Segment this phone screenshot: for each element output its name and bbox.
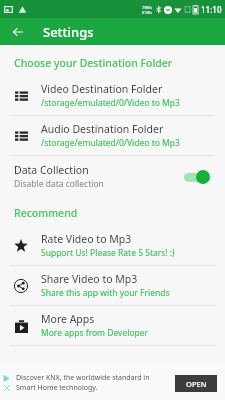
button[interactable]: Share Video to Mp3: [0, 266, 225, 305]
button[interactable]: Back: [7, 21, 29, 43]
button[interactable]: Video Destination Folder: [0, 76, 225, 115]
button[interactable]: OPEN: [175, 375, 217, 392]
button[interactable]: Discover KNX, the worldwide standard in: [0, 366, 225, 400]
button[interactable]: More Apps: [0, 306, 225, 345]
staticText: Share this app with your Friends: [41, 287, 170, 299]
staticText: Rate Video to Mp3: [41, 232, 132, 246]
staticText: Discover KNX, the worldwide standard in: [16, 373, 150, 383]
staticText: /storage/emulated/0/Video to Mp3: [41, 137, 180, 149]
staticText: Share Video to Mp3: [41, 272, 138, 286]
button[interactable]: Audio Destination Folder: [0, 116, 225, 155]
staticText: Settings: [43, 23, 94, 41]
staticText: More apps from Developer: [41, 327, 149, 339]
staticText: 518/s: [142, 10, 153, 15]
button[interactable]: Data collection toggle: [181, 167, 215, 187]
staticText: Recommend: [14, 206, 78, 220]
staticText: Data Collection: [14, 163, 89, 177]
staticText: More Apps: [41, 312, 95, 326]
button[interactable]: Rate Video to Mp3: [0, 226, 225, 265]
staticText: 11:10: [201, 4, 222, 15]
staticText: Audio Destination Folder: [41, 122, 164, 136]
staticText: Disable data collection: [14, 178, 104, 190]
staticText: 798/s: [142, 5, 153, 10]
staticText: Choose your Destination Folder: [14, 56, 173, 70]
button[interactable]: Data Collection: [0, 156, 225, 197]
staticText: Video Destination Folder: [41, 82, 163, 96]
staticText: Support Us! Please Rate 5 Stars! :): [41, 247, 175, 259]
staticText: OPEN: [186, 379, 207, 389]
staticText: /storage/emulated/0/Video to Mp3: [41, 97, 180, 109]
staticText: Smart Home technology.: [16, 383, 98, 393]
